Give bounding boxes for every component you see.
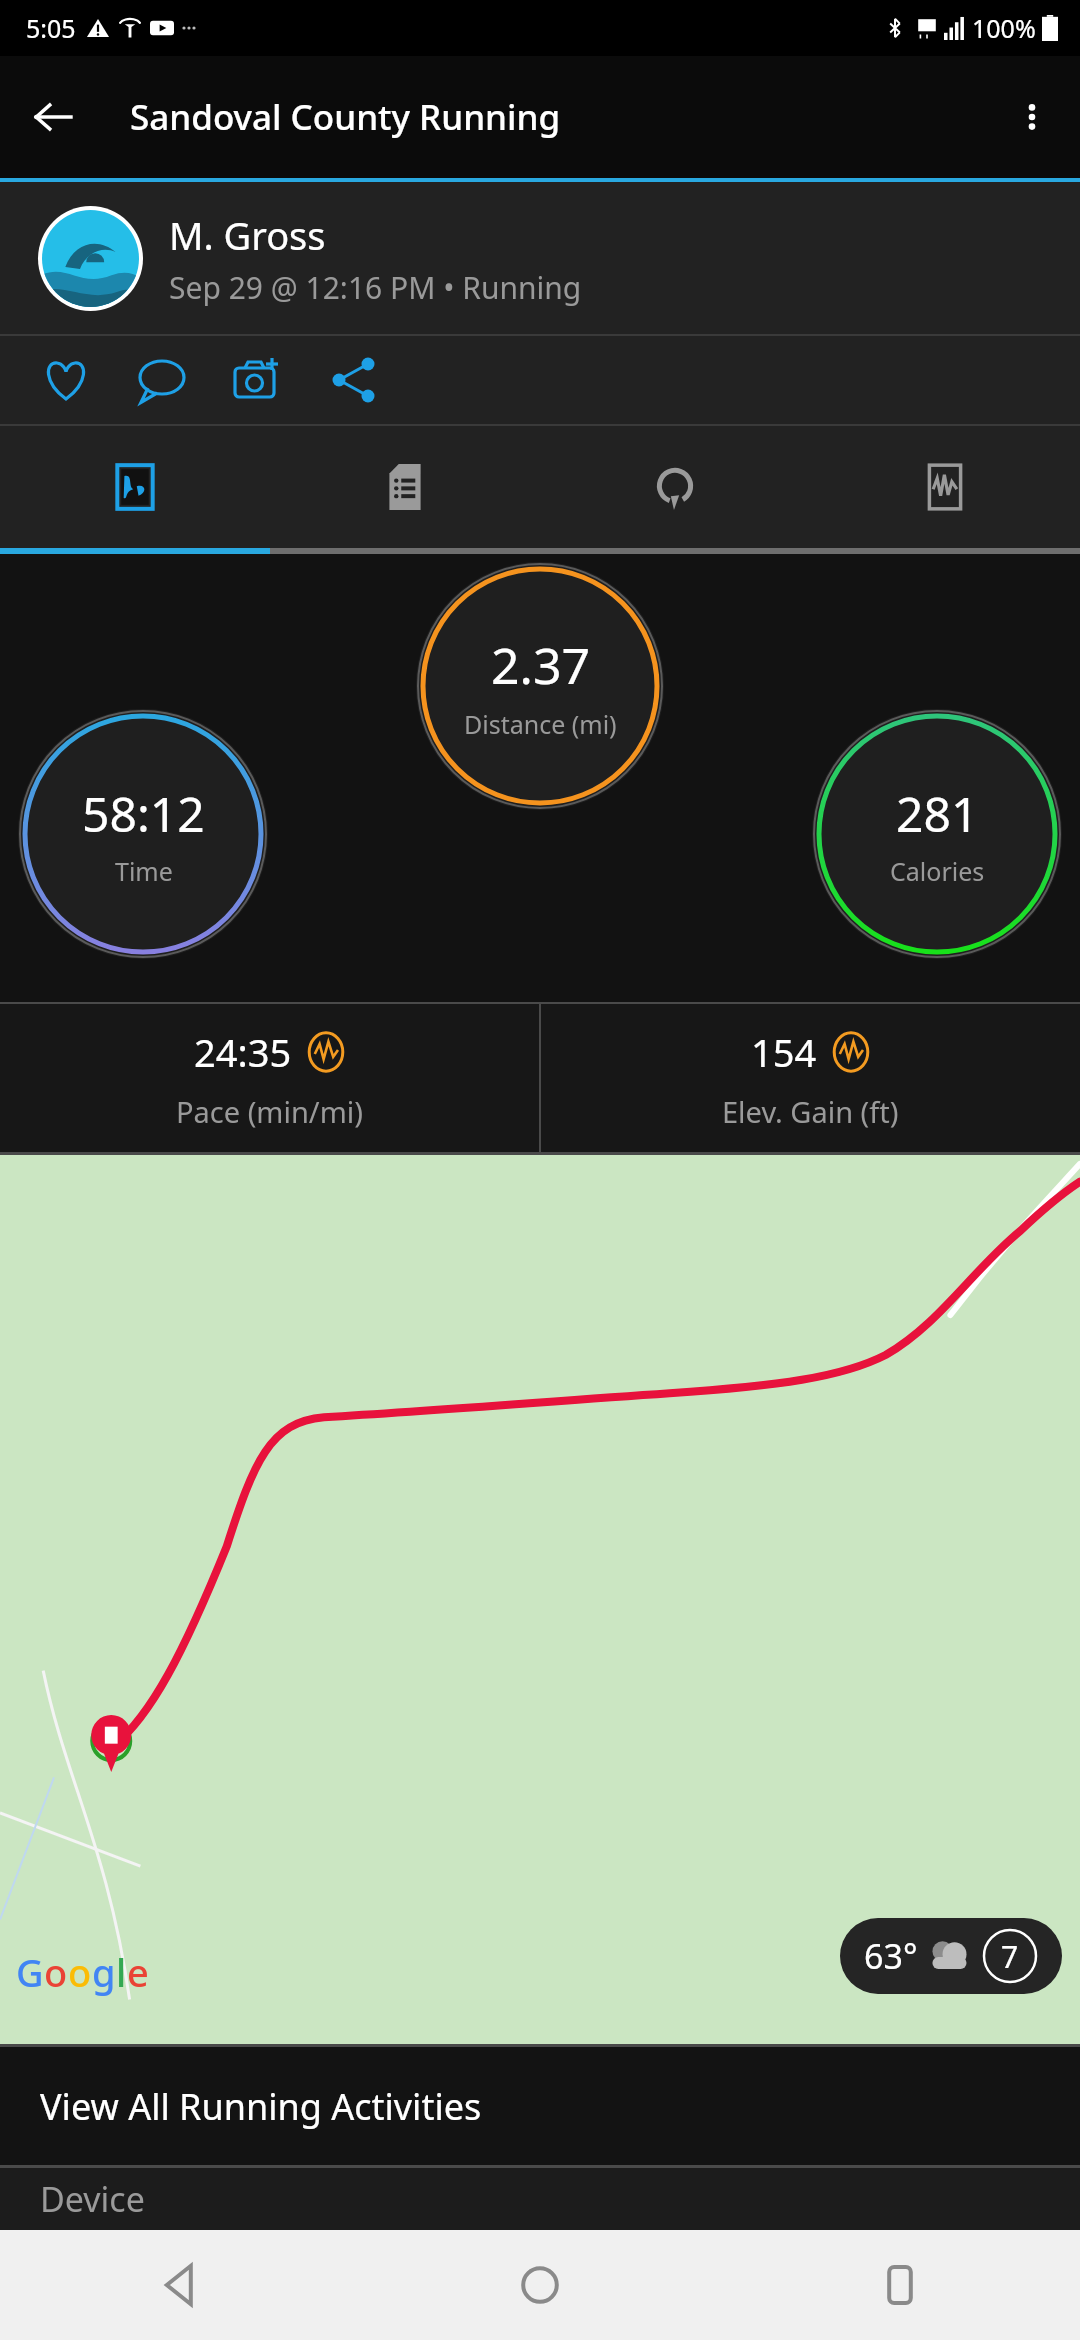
staticText: Calories bbox=[890, 854, 985, 888]
staticText: M. Gross bbox=[169, 209, 326, 261]
staticText: l bbox=[116, 1946, 127, 1998]
staticText: Sandoval County Running bbox=[130, 93, 561, 141]
button[interactable]: 24:35 bbox=[0, 1004, 539, 1152]
staticText: 7 bbox=[1001, 1936, 1019, 1977]
button[interactable]: Laps bbox=[540, 426, 810, 548]
staticText: Elev. Gain (ft) bbox=[722, 1092, 899, 1131]
staticText: g bbox=[92, 1946, 116, 1998]
button[interactable]: Like bbox=[18, 336, 114, 424]
button[interactable]: Calories 281 bbox=[812, 709, 1062, 959]
button[interactable]: Distance 2.37 mi bbox=[416, 562, 664, 810]
button[interactable]: Home bbox=[360, 2230, 720, 2340]
staticText: o bbox=[44, 1946, 68, 1998]
staticText: 63° bbox=[864, 1933, 918, 1979]
staticText: Distance (mi) bbox=[464, 707, 617, 741]
button[interactable]: Back bbox=[22, 86, 84, 148]
staticText: 24:35 bbox=[194, 1026, 292, 1078]
staticText: Time bbox=[115, 854, 173, 888]
button[interactable]: Time 58:12 bbox=[18, 709, 268, 959]
button[interactable]: Comment bbox=[114, 336, 210, 424]
staticText: 58:12 bbox=[82, 781, 205, 846]
button[interactable]: Device bbox=[0, 2168, 1080, 2230]
button[interactable]: Back bbox=[0, 2230, 360, 2340]
button[interactable]: More options bbox=[1002, 87, 1062, 147]
staticText: 100% bbox=[972, 11, 1036, 45]
button[interactable]: M. Gross bbox=[0, 182, 1080, 334]
staticText: 2.37 bbox=[491, 631, 591, 699]
staticText: Device bbox=[40, 2176, 145, 2222]
button[interactable]: View All Running Activities bbox=[0, 2047, 1080, 2165]
button[interactable]: 154 bbox=[541, 1004, 1080, 1152]
button[interactable]: Details bbox=[270, 426, 540, 548]
staticText: View All Running Activities bbox=[40, 2082, 482, 2131]
button[interactable]: Add photo bbox=[210, 336, 306, 424]
staticText: Pace (min/mi) bbox=[176, 1092, 363, 1131]
button[interactable]: G bbox=[0, 1155, 1080, 2044]
staticText: G bbox=[16, 1946, 44, 1998]
staticText: 281 bbox=[896, 781, 979, 846]
button[interactable]: Recent apps bbox=[720, 2230, 1080, 2340]
button[interactable]: Graphs bbox=[810, 426, 1080, 548]
staticText: 5:05 bbox=[26, 11, 76, 45]
staticText: 154 bbox=[751, 1026, 817, 1078]
staticText: Sep 29 @ 12:16 PM • Running bbox=[169, 267, 582, 308]
button[interactable]: 63° bbox=[840, 1918, 1062, 1994]
button[interactable]: Map bbox=[0, 426, 270, 548]
staticText: e bbox=[127, 1946, 149, 1998]
staticText: o bbox=[68, 1946, 92, 1998]
button[interactable]: Share bbox=[306, 336, 402, 424]
